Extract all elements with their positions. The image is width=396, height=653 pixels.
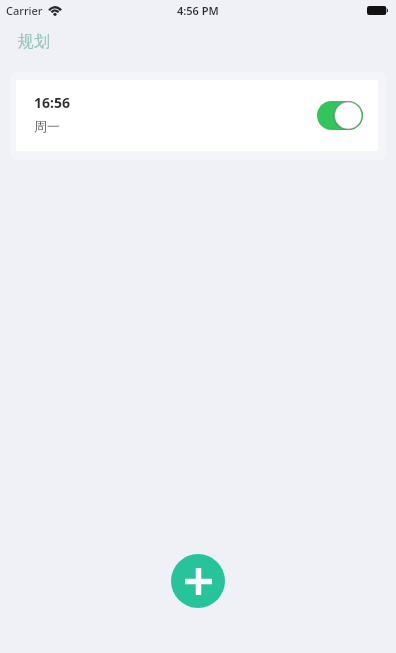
staticText: 4:56 PM <box>177 3 219 18</box>
staticText: Carrier <box>6 3 43 18</box>
button[interactable]: Add alarm <box>171 554 225 608</box>
staticText: 16:56 <box>34 93 70 112</box>
button[interactable]: Toggle alarm <box>317 101 363 130</box>
button[interactable]: 16:56 <box>16 80 378 151</box>
staticText: 规划 <box>18 32 50 52</box>
staticText: 周一 <box>34 118 60 134</box>
